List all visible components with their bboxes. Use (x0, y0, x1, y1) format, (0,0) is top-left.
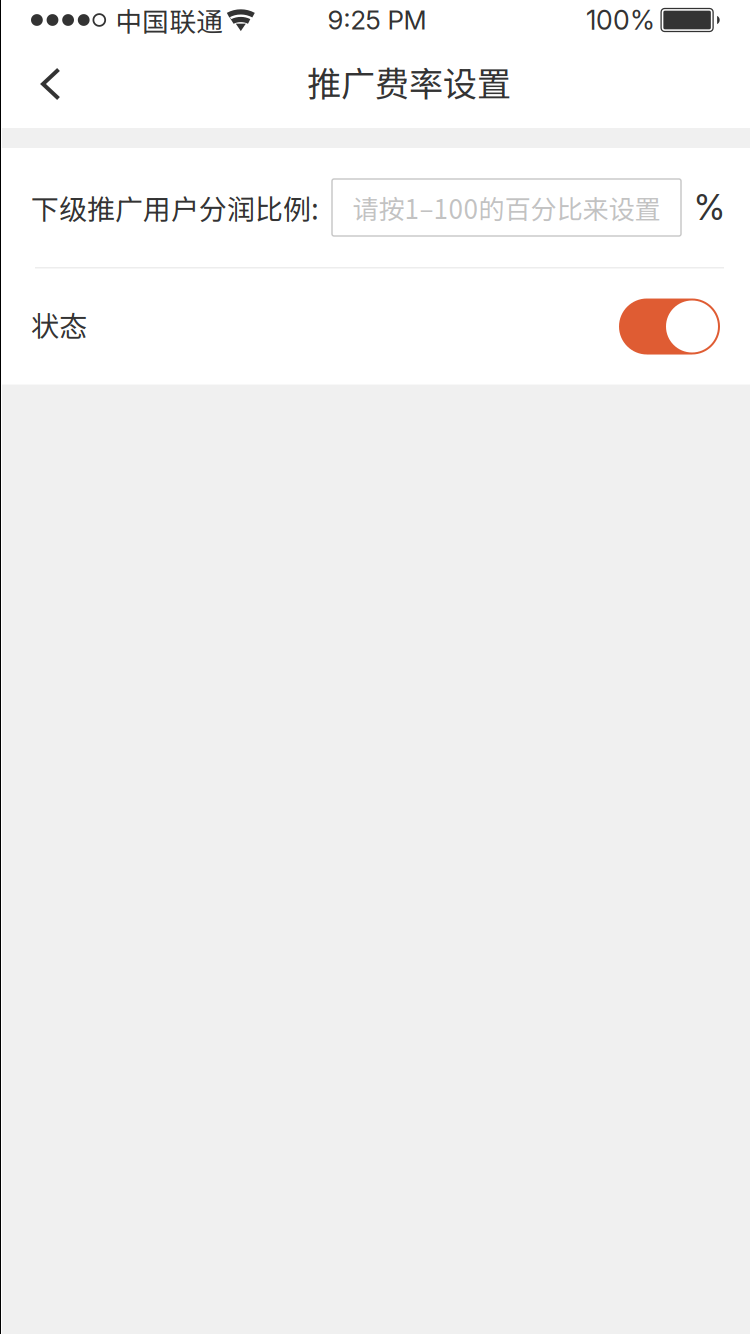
button[interactable]: Status toggle (619, 298, 720, 354)
staticText: 推广费率设置 (307, 57, 511, 106)
staticText: 下级推广用户分润比例: (31, 187, 319, 228)
button[interactable]: Back (0, 40, 80, 128)
staticText: 100% (586, 4, 655, 36)
staticText: 状态 (31, 304, 87, 345)
staticText: % (694, 186, 725, 228)
staticText: 9:25 PM (327, 4, 426, 36)
button[interactable]: 请按1–100的百分比来设置 (332, 179, 681, 236)
staticText: 中国联通 (115, 1, 223, 39)
staticText: 请按1–100的百分比来设置 (352, 189, 660, 226)
